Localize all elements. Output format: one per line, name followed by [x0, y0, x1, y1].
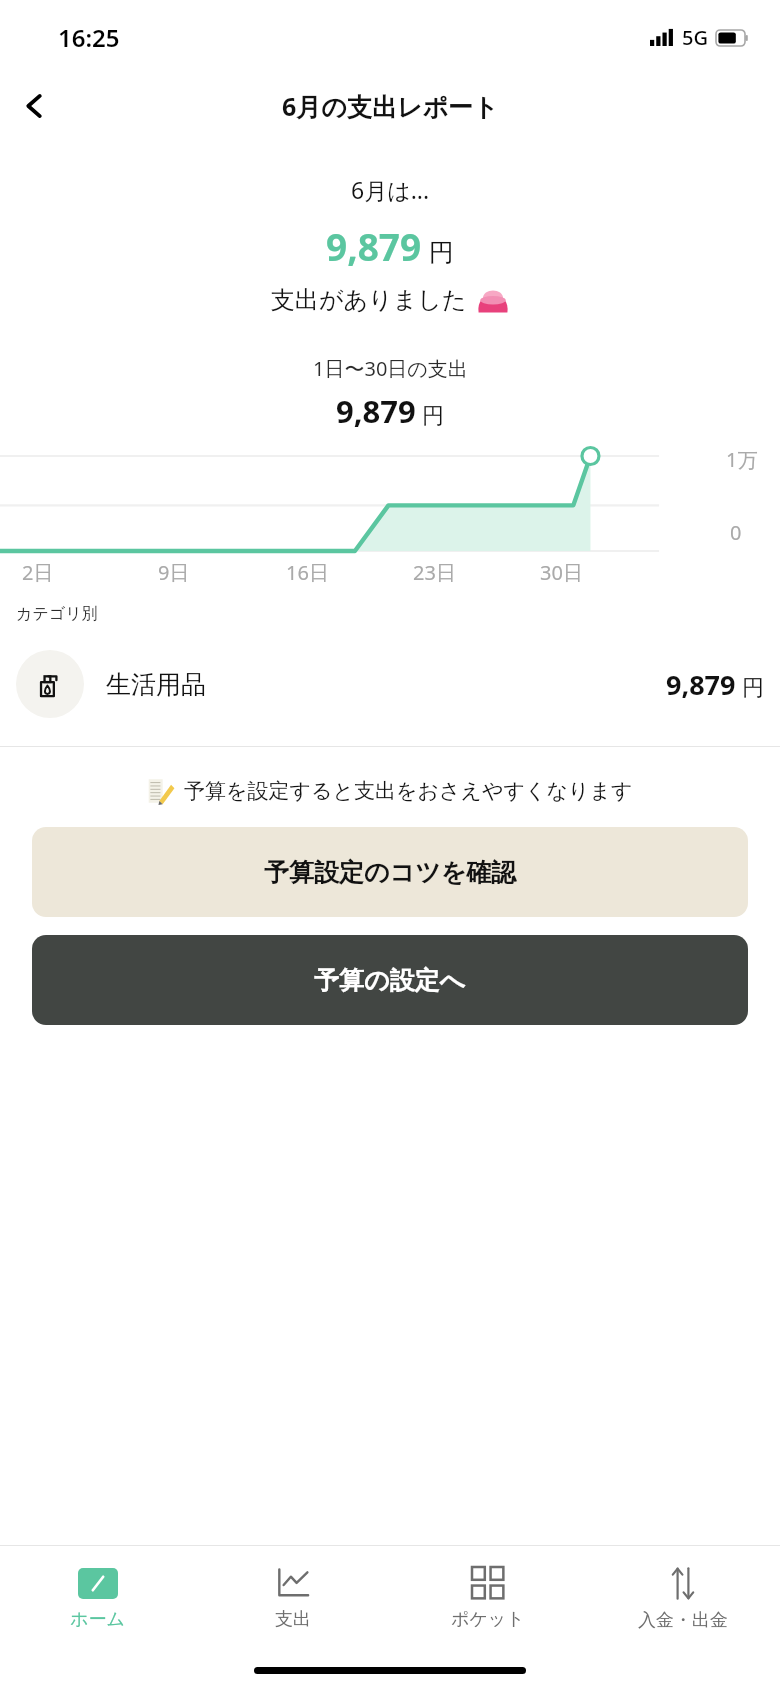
- staticText: 円: [429, 237, 454, 268]
- staticText: 0: [730, 519, 742, 546]
- staticText: 円: [742, 674, 764, 702]
- staticText: 2日: [22, 559, 54, 586]
- staticText: 6月は...: [351, 174, 430, 205]
- button[interactable]: 支出: [195, 1546, 390, 1652]
- staticText: 23日: [413, 559, 456, 586]
- staticText: 予算の設定へ: [314, 965, 466, 996]
- button[interactable]: ポケット: [390, 1546, 585, 1652]
- staticText: 円: [422, 402, 444, 430]
- staticText: 予算を設定すると支出をおさえやすくなります: [184, 778, 633, 804]
- button[interactable]: 予算設定のコツを確認: [32, 827, 748, 917]
- staticText: 16日: [286, 559, 329, 586]
- staticText: 6月の支出レポート: [282, 89, 499, 123]
- button[interactable]: Back: [6, 77, 64, 135]
- staticText: 9,879: [666, 666, 736, 703]
- staticText: 支出がありました: [271, 285, 467, 315]
- staticText: 9日: [158, 559, 190, 586]
- staticText: 30日: [540, 559, 583, 586]
- staticText: カテゴリ別: [16, 604, 98, 624]
- staticText: ポケット: [451, 1608, 525, 1631]
- button[interactable]: 予算の設定へ: [32, 935, 748, 1025]
- button[interactable]: 入金・出金: [585, 1546, 780, 1652]
- staticText: 生活用品: [106, 669, 206, 700]
- staticText: 予算設定のコツを確認: [264, 857, 517, 888]
- button[interactable]: 生活用品: [0, 646, 780, 722]
- staticText: 5G: [682, 24, 708, 51]
- staticText: 9,879: [326, 221, 422, 271]
- staticText: 入金・出金: [638, 1609, 728, 1632]
- staticText: 支出: [275, 1608, 311, 1631]
- staticText: ホーム: [70, 1608, 125, 1631]
- staticText: 9,879: [336, 390, 416, 432]
- staticText: 16:25: [58, 21, 120, 54]
- staticText: 1日〜30日の支出: [313, 355, 468, 382]
- button[interactable]: ホーム: [0, 1546, 195, 1652]
- staticText: 1万: [726, 446, 758, 473]
